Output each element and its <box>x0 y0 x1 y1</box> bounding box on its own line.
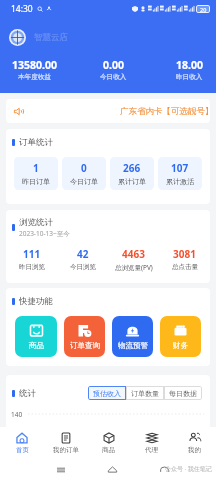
staticText: 我的 <box>188 446 201 454</box>
staticText: 1 <box>33 161 39 175</box>
button[interactable]: Announcement <box>6 99 210 123</box>
other: Back <box>159 464 170 475</box>
button[interactable]: 每日数据 <box>164 386 202 400</box>
button[interactable]: 订单数量 <box>126 386 164 400</box>
button[interactable]: 4463 <box>108 247 159 272</box>
button[interactable]: 107 <box>158 157 202 190</box>
other: Recents <box>56 465 66 475</box>
staticText: 本年度收益 <box>18 73 51 81</box>
button[interactable]: 我的订单 <box>44 427 87 458</box>
staticText: 18.00 <box>176 58 203 72</box>
staticText: 统计 <box>19 388 36 399</box>
staticText: 预估收入 <box>93 389 121 398</box>
button[interactable]: 代理 <box>130 427 173 458</box>
button[interactable]: 266 <box>110 157 154 190</box>
staticText: 广东省内卡【可选靓号】 <box>120 106 210 117</box>
staticText: 0.00 <box>103 58 124 72</box>
staticText: 今日浏览 <box>70 263 96 271</box>
button[interactable]: 首页 <box>0 427 44 458</box>
staticText: 昨日浏览 <box>19 263 45 271</box>
button[interactable]: 42 <box>57 247 108 271</box>
staticText: 订单数量 <box>131 389 159 398</box>
staticText: 111 <box>23 247 41 261</box>
staticText: 每日数据 <box>169 389 197 398</box>
staticText: 物流预警 <box>118 341 148 350</box>
button[interactable]: 0 <box>62 157 106 190</box>
staticText: 商品 <box>29 341 44 350</box>
staticText: 财务 <box>173 341 188 350</box>
staticText: 总浏览量(PV) <box>115 263 153 272</box>
staticText: 累计激活 <box>166 177 194 186</box>
staticText: 今日收入 <box>100 73 127 81</box>
staticText: 公众号 · 我住笔记 <box>165 465 212 473</box>
staticText: 2023-10-13~至今 <box>19 229 70 238</box>
button[interactable]: 预估收入 <box>88 386 126 400</box>
staticText: 快捷功能 <box>19 296 53 307</box>
staticText: 今日订单 <box>70 177 98 186</box>
button[interactable]: 财务 <box>160 316 201 357</box>
staticText: 智慧云店 <box>34 32 68 43</box>
staticText: 0 <box>81 161 87 175</box>
button[interactable]: 我的 <box>173 427 216 458</box>
staticText: 4463 <box>122 247 145 261</box>
staticText: 107 <box>171 161 189 175</box>
staticText: 140 <box>11 410 23 419</box>
button[interactable]: 商品 <box>15 316 57 357</box>
staticText: 昨日收入 <box>176 73 203 81</box>
staticText: 累计订单 <box>118 177 146 186</box>
staticText: 代理 <box>145 446 158 454</box>
staticText: 我的订单 <box>53 446 79 454</box>
other: Home <box>107 464 118 475</box>
staticText: 42 <box>77 247 89 261</box>
staticText: 3081 <box>173 247 196 261</box>
staticText: 总点击量 <box>172 263 198 271</box>
button[interactable]: 1 <box>14 157 58 190</box>
staticText: 266 <box>123 161 141 175</box>
staticText: 13580.00 <box>12 58 57 72</box>
staticText: 20 <box>200 6 207 13</box>
staticText: 浏览统计 <box>19 217 53 228</box>
staticText: 首页 <box>16 446 29 454</box>
button[interactable]: 物流预警 <box>112 316 153 357</box>
button[interactable]: 3081 <box>159 247 210 271</box>
staticText: 昨日订单 <box>22 177 50 186</box>
staticText: 订单查询 <box>70 341 100 350</box>
button[interactable]: 111 <box>6 247 57 271</box>
button[interactable]: 商品 <box>87 427 130 458</box>
button[interactable]: 订单查询 <box>64 316 105 357</box>
other: Announcement <box>14 108 24 115</box>
staticText: 订单统计 <box>19 137 53 148</box>
staticText: 商品 <box>102 446 115 454</box>
staticText: 14:30 <box>11 3 33 15</box>
